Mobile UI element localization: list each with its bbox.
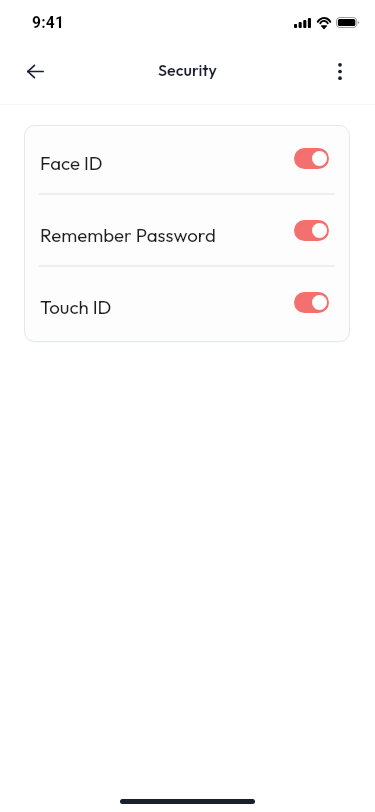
button[interactable]: Back <box>13 49 57 93</box>
button[interactable]: More options <box>318 49 362 93</box>
staticText: Touch ID <box>40 295 112 319</box>
button[interactable]: Toggle <box>294 148 329 169</box>
staticText: Remember Password <box>40 223 216 247</box>
button[interactable]: Touch ID <box>24 269 350 341</box>
staticText: Face ID <box>40 151 103 175</box>
button[interactable]: Toggle <box>294 220 329 241</box>
button[interactable]: Face ID <box>24 125 350 197</box>
staticText: 9:41 <box>32 14 65 32</box>
staticText: Security <box>158 60 217 80</box>
button[interactable]: Toggle <box>294 292 329 313</box>
button[interactable]: Remember Password <box>24 197 350 269</box>
